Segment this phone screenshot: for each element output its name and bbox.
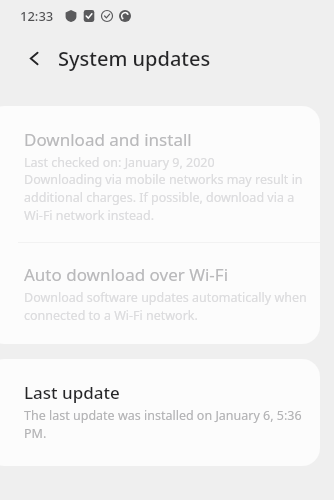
staticText: Auto download over Wi-Fi	[24, 263, 229, 286]
staticText: Download software updates automatically …	[24, 289, 312, 324]
staticText: Last checked on: January 9, 2020	[24, 154, 215, 171]
staticText: Downloading via mobile networks may resu…	[24, 171, 312, 224]
button[interactable]: Back	[18, 42, 50, 74]
staticText: Download and install	[24, 128, 192, 151]
button[interactable]: Download and install	[0, 106, 320, 242]
button[interactable]: Last update	[0, 359, 320, 466]
staticText: Last update	[24, 381, 120, 404]
staticText: System updates	[58, 45, 211, 72]
staticText: The last update was installed on January…	[24, 407, 312, 442]
staticText: 12:33	[20, 7, 54, 25]
button[interactable]: Auto download over Wi-Fi	[0, 243, 320, 344]
